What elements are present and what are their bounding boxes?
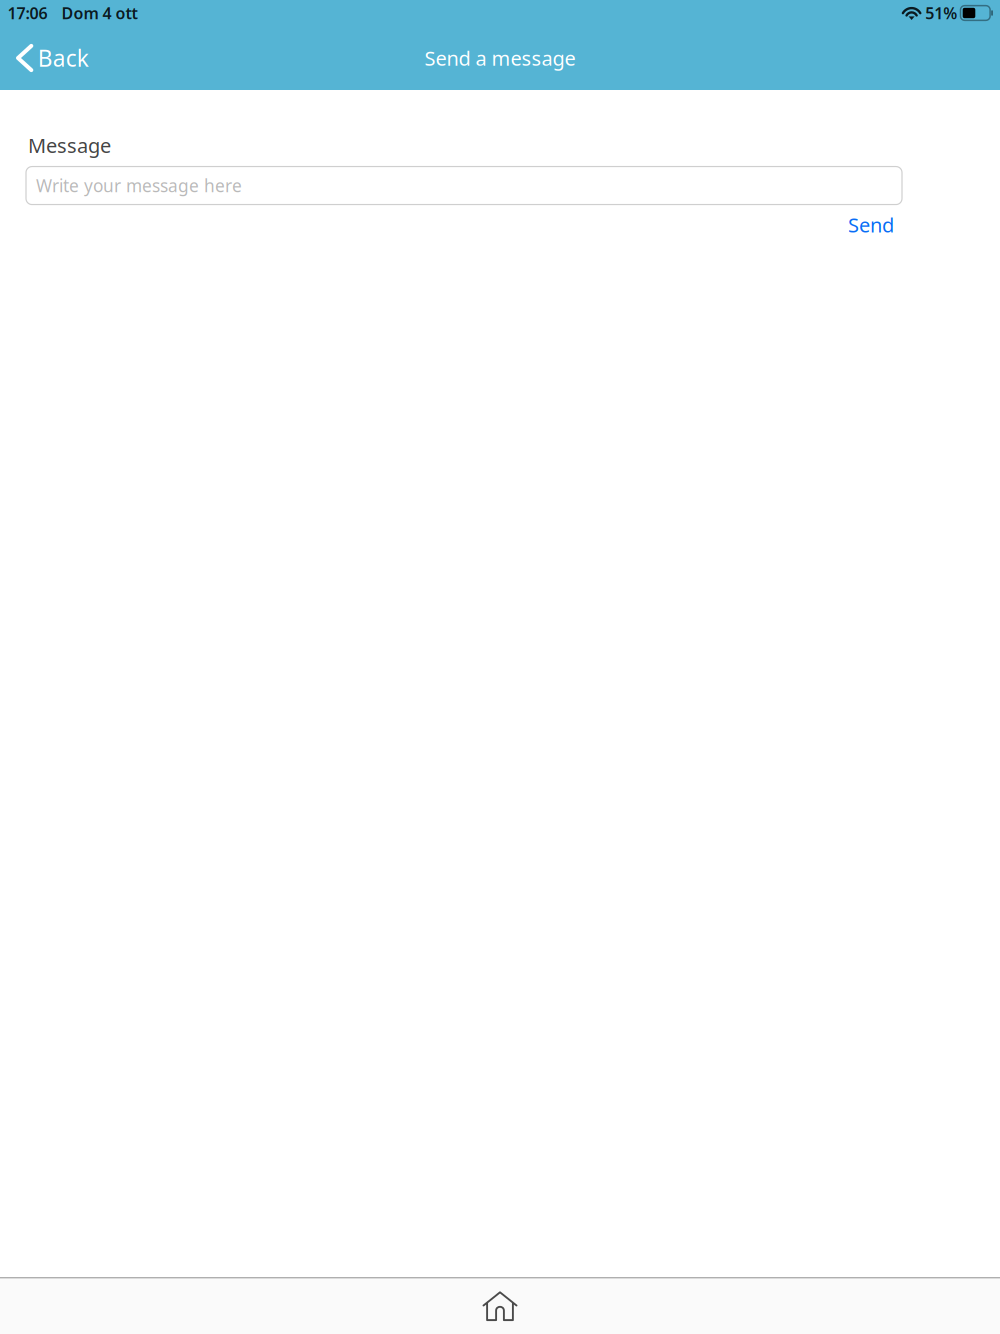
staticText: Send a message — [424, 45, 575, 71]
staticText: Write your message here — [36, 174, 242, 197]
staticText: Message — [28, 132, 111, 159]
staticText: 51% — [925, 2, 957, 24]
button[interactable]: Back — [0, 26, 104, 90]
staticText: 17:06 — [7, 2, 47, 24]
staticText: Dom 4 ott — [61, 2, 137, 24]
button[interactable]: Home — [0, 1278, 1000, 1334]
staticText: Send — [848, 212, 894, 238]
button[interactable]: Write your message here — [26, 167, 902, 205]
staticText: Back — [38, 43, 89, 73]
button[interactable]: Send — [846, 210, 896, 240]
